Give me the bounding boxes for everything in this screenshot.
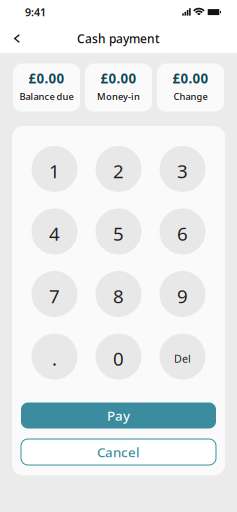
staticText: Del <box>174 351 191 366</box>
button[interactable]: 3 <box>159 146 205 192</box>
staticText: Cancel <box>97 443 140 461</box>
button[interactable]: . <box>31 333 77 379</box>
staticText: 6 <box>177 221 188 246</box>
staticText: 5 <box>113 221 124 246</box>
staticText: 9:41 <box>25 5 46 19</box>
staticText: Change <box>173 90 207 103</box>
button[interactable]: 5 <box>95 208 141 254</box>
staticText: Money-in <box>97 90 140 103</box>
button[interactable]: Cancel <box>21 439 216 465</box>
staticText: 4 <box>49 221 60 246</box>
staticText: £0.00 <box>28 69 64 87</box>
button[interactable]: 2 <box>95 146 141 192</box>
button[interactable]: Back <box>5 26 29 50</box>
staticText: £0.00 <box>172 69 208 87</box>
staticText: 2 <box>113 159 124 183</box>
button[interactable]: 0 <box>95 333 141 379</box>
staticText: 0 <box>113 346 124 371</box>
staticText: 8 <box>113 284 124 308</box>
button[interactable]: 4 <box>31 208 77 254</box>
button[interactable]: 7 <box>31 271 77 317</box>
staticText: 1 <box>49 159 60 183</box>
staticText: Cash payment <box>77 30 160 46</box>
button[interactable]: 6 <box>159 208 205 254</box>
staticText: 7 <box>49 284 60 308</box>
button[interactable]: Del <box>159 333 205 379</box>
button[interactable]: 1 <box>31 146 77 192</box>
staticText: 3 <box>177 159 188 183</box>
button[interactable]: 8 <box>95 271 141 317</box>
staticText: Balance due <box>19 90 73 103</box>
staticText: 9 <box>177 284 188 308</box>
button[interactable]: Pay <box>21 402 216 428</box>
button[interactable]: 9 <box>159 271 205 317</box>
staticText: £0.00 <box>100 69 136 87</box>
staticText: Pay <box>107 407 130 424</box>
staticText: . <box>52 346 57 371</box>
